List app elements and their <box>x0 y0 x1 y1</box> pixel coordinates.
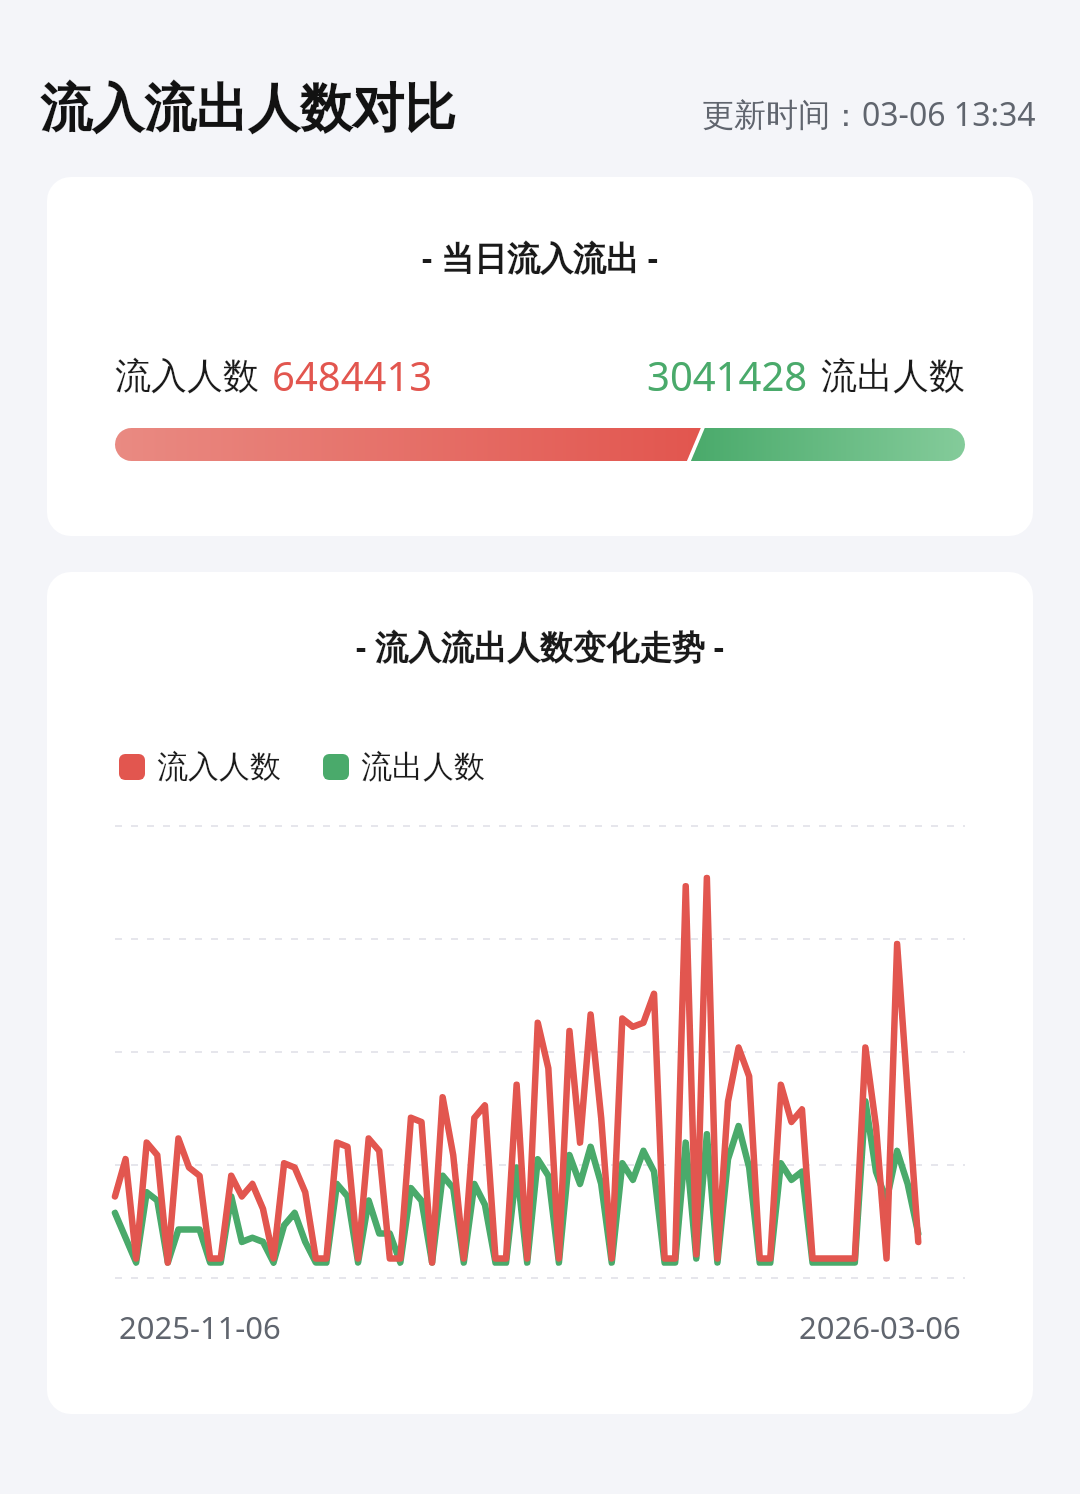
staticText: 流入人数 <box>115 353 259 398</box>
button[interactable]: - 流入流出人数变化走势 - <box>47 572 1033 1414</box>
staticText: 流出人数 <box>361 747 485 786</box>
staticText: 流入流出人数对比 <box>40 76 456 142</box>
staticText: 6484413 <box>272 348 433 402</box>
staticText: - 流入流出人数变化走势 - <box>47 624 1033 669</box>
staticText: 更新时间：03-06 13:34 <box>702 92 1036 136</box>
button[interactable]: - 当日流入流出 - <box>47 177 1033 536</box>
staticText: 流入人数 <box>157 747 281 786</box>
staticText: 2026-03-06 <box>799 1306 961 1348</box>
staticText: 2025-11-06 <box>119 1306 281 1348</box>
staticText: 流出人数 <box>821 353 965 398</box>
staticText: 3041428 <box>647 348 808 402</box>
staticText: - 当日流入流出 - <box>47 235 1033 280</box>
